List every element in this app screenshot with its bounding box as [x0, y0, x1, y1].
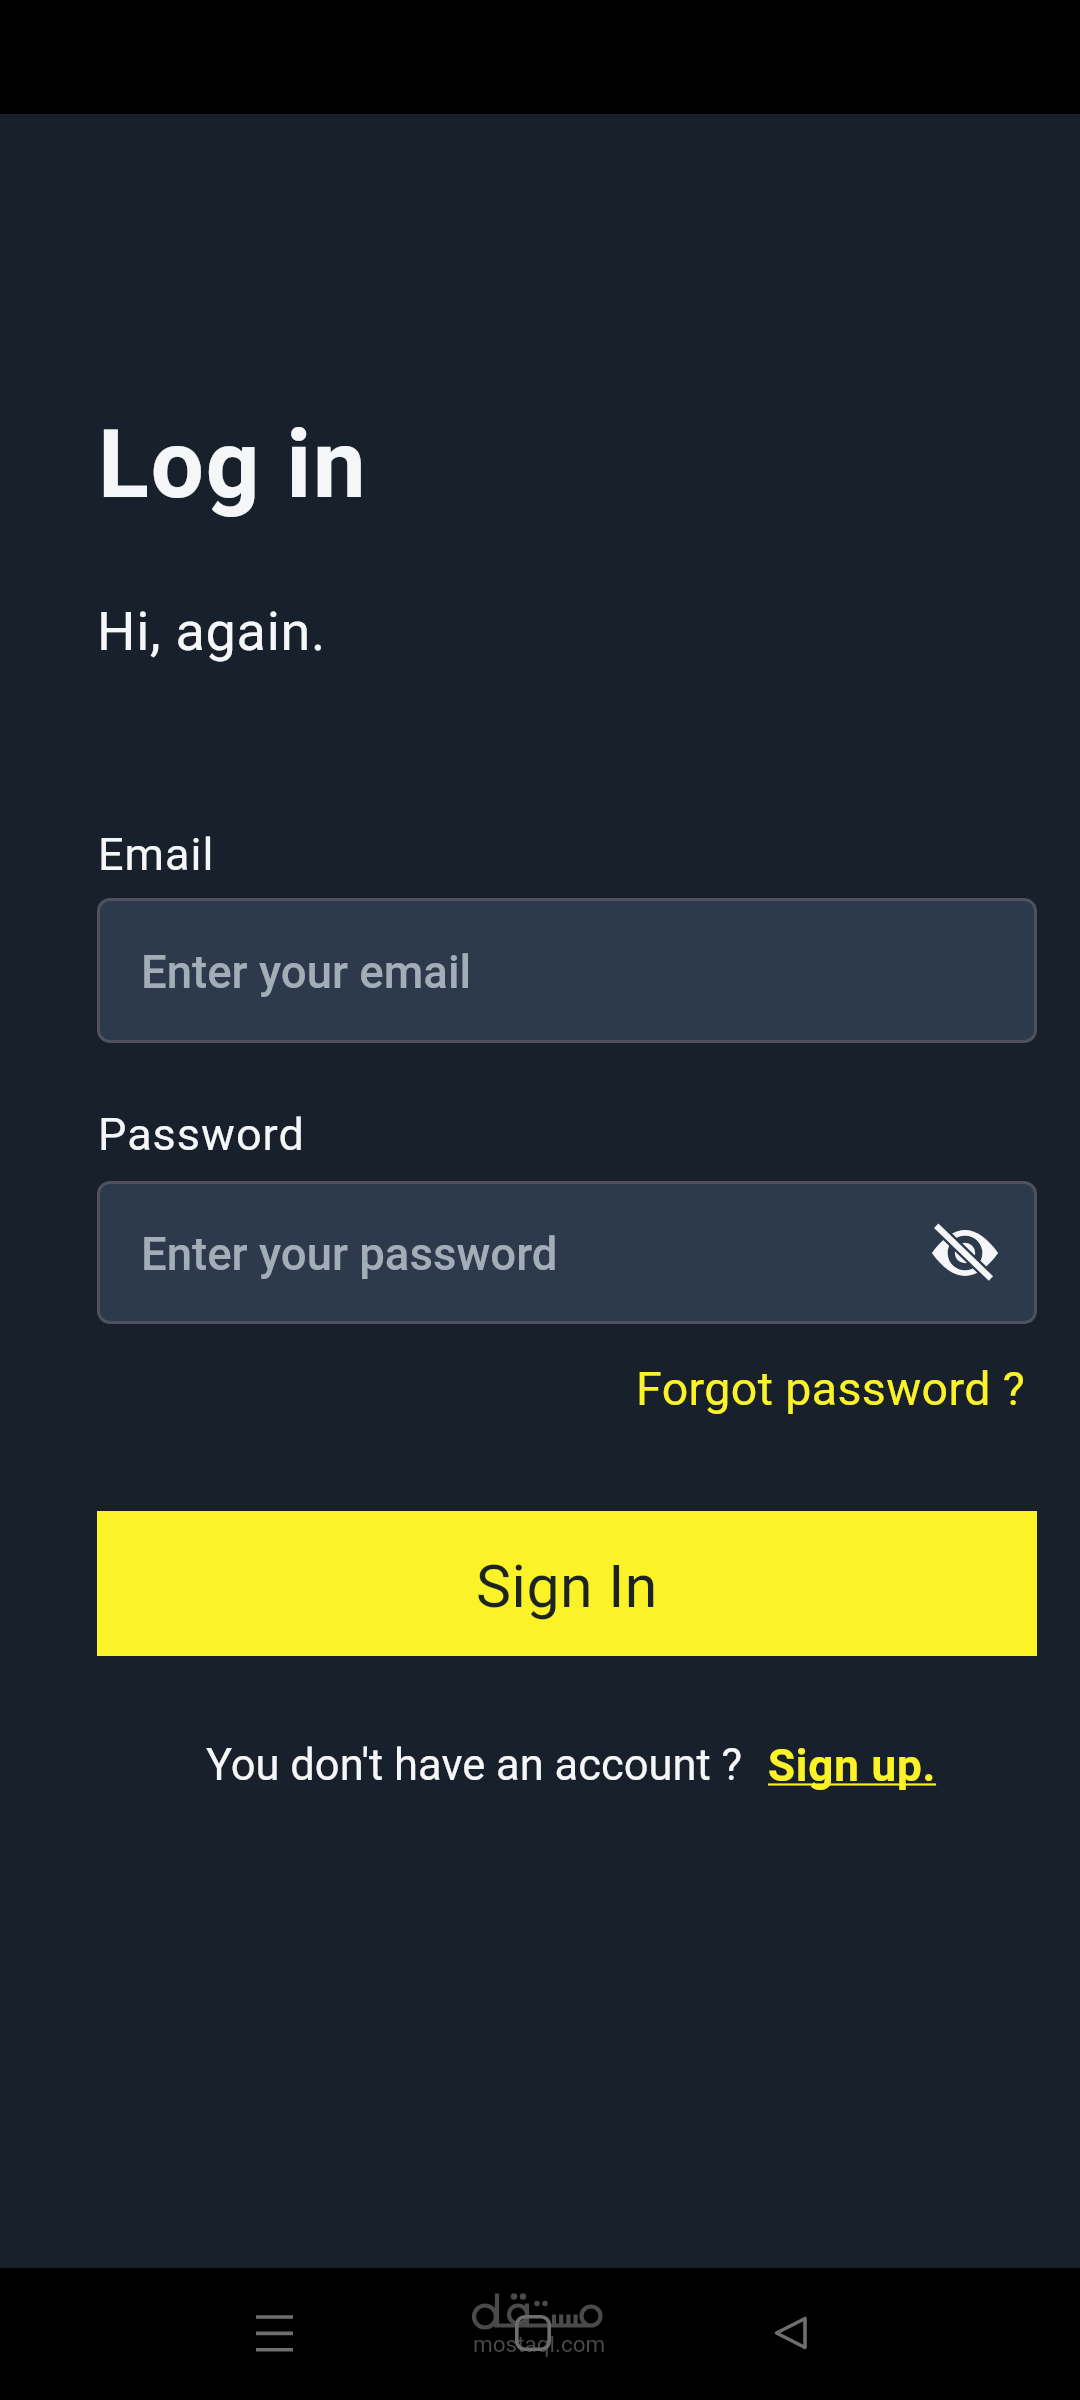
staticText: Enter your password — [141, 1228, 558, 1281]
button[interactable]: Home — [473, 2273, 593, 2393]
button[interactable]: Enter your password — [97, 1181, 1037, 1324]
button[interactable]: Recents — [214, 2273, 334, 2393]
button[interactable]: Show password — [924, 1212, 1006, 1294]
staticText: Log in — [98, 410, 368, 520]
staticText: Forgot password ? — [636, 1362, 1026, 1416]
staticText: Sign up. — [768, 1740, 937, 1792]
button[interactable]: Back — [730, 2273, 850, 2393]
button[interactable]: Sign In — [97, 1511, 1037, 1656]
staticText: mostaql.com — [473, 2331, 606, 2357]
button[interactable]: Enter your email — [97, 898, 1037, 1043]
staticText: Enter your email — [141, 946, 472, 999]
staticText: Hi, again. — [97, 600, 326, 663]
staticText: You don't have an account ? — [206, 1740, 743, 1791]
staticText: Email — [98, 828, 215, 881]
button[interactable]: Sign up. — [768, 1740, 937, 1792]
staticText: Sign In — [476, 1552, 658, 1621]
button[interactable]: Forgot password ? — [636, 1362, 1026, 1416]
staticText: Password — [98, 1108, 305, 1161]
